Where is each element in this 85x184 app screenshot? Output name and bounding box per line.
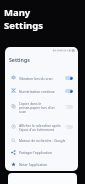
- button[interactable]: Toggle: [65, 89, 73, 93]
- staticText: Moteur de recherche - Google: [19, 138, 66, 142]
- staticText: scan: [19, 109, 27, 113]
- button[interactable]: Vibration lors du scan: [5, 71, 78, 84]
- staticText: Numérisation continue: [19, 89, 55, 93]
- staticText: Many: [4, 6, 31, 19]
- button[interactable]: Toggle: [65, 125, 73, 129]
- staticText: Settings: [4, 19, 43, 32]
- staticText: presse-papier lors d'un: [19, 105, 55, 109]
- button[interactable]: Partager l'application: [5, 146, 78, 158]
- button[interactable]: Toggle: [65, 105, 73, 109]
- staticText: Copier dans le: [19, 101, 42, 105]
- button[interactable]: Numérisation continue: [5, 84, 78, 97]
- staticText: Afficher le calendrier après: [19, 123, 61, 127]
- staticText: l'ajout d'un évènement: [19, 127, 55, 131]
- button[interactable]: Toggle: [65, 76, 73, 80]
- button[interactable]: Copier dans le: [5, 100, 78, 113]
- button[interactable]: Afficher le calendrier après: [5, 120, 78, 133]
- staticText: Noter l'application: [19, 162, 48, 166]
- staticText: Partager l'application: [19, 150, 52, 154]
- button[interactable]: Moteur de recherche - Google: [5, 134, 78, 146]
- staticText: Vibration lors du scan: [19, 76, 53, 80]
- staticText: Settings: [9, 56, 30, 63]
- button[interactable]: Noter l'application: [5, 158, 78, 170]
